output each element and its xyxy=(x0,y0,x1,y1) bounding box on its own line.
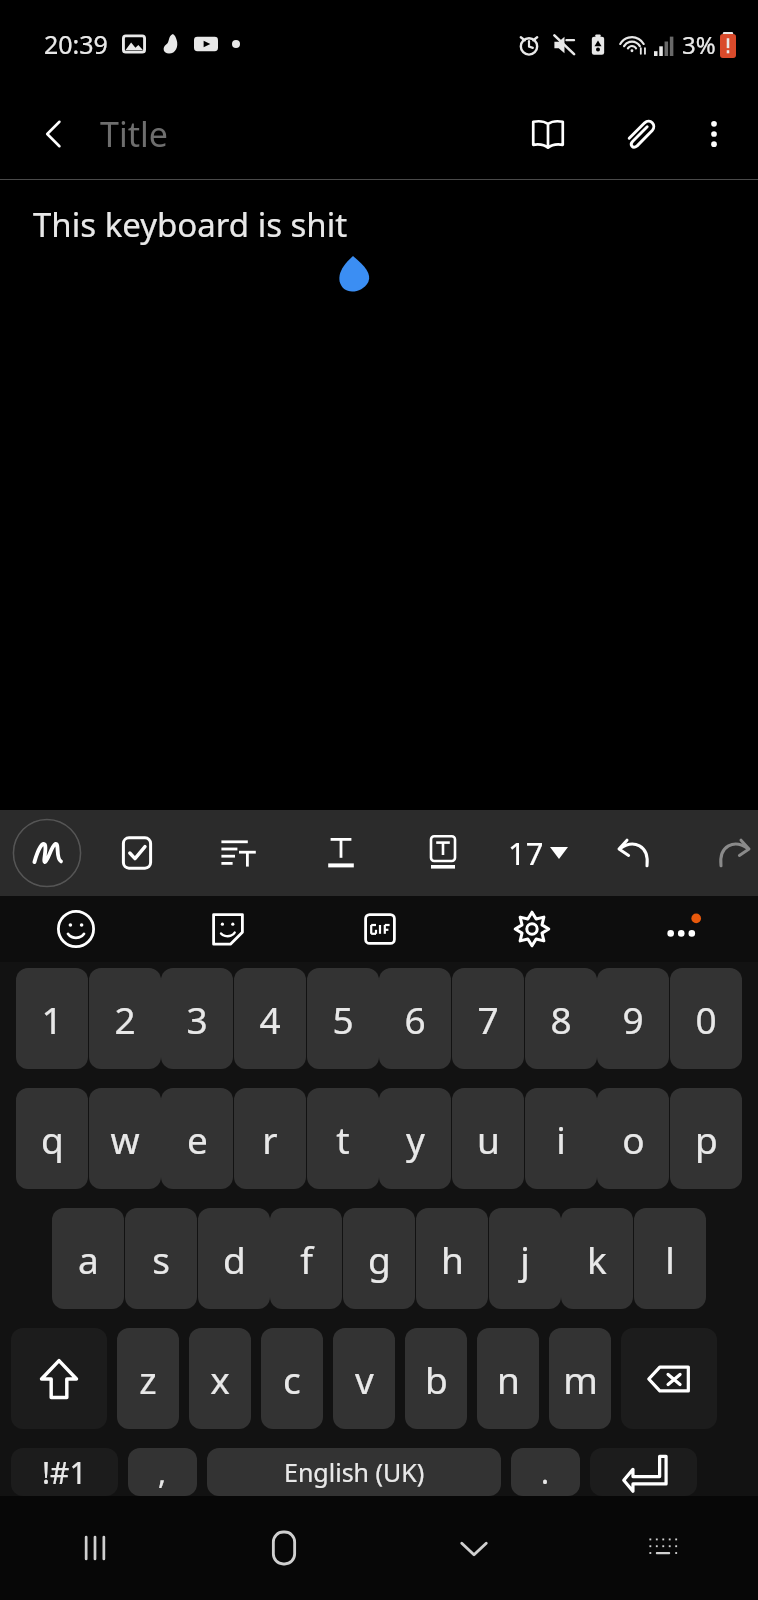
staticText: g xyxy=(368,1234,391,1284)
staticText: z xyxy=(139,1354,157,1404)
button[interactable]: Paragraph xyxy=(210,824,268,882)
staticText: k xyxy=(587,1234,607,1284)
staticText: v xyxy=(355,1354,374,1404)
button[interactable]: 4 xyxy=(234,968,306,1069)
button[interactable]: 6 xyxy=(379,968,451,1069)
button[interactable]: o xyxy=(597,1088,669,1189)
button[interactable]: Handwriting xyxy=(12,818,82,888)
staticText: 7 xyxy=(477,994,499,1044)
button[interactable]: m xyxy=(549,1328,611,1429)
staticText: w xyxy=(110,1114,140,1164)
button[interactable]: b xyxy=(405,1328,467,1429)
button[interactable]: Text style xyxy=(312,824,370,882)
button[interactable]: p xyxy=(670,1088,742,1189)
button[interactable]: Hide keyboard xyxy=(438,1512,510,1584)
staticText: This keyboard is shit xyxy=(33,202,348,247)
button[interactable]: r xyxy=(234,1088,306,1189)
button[interactable]: Recents xyxy=(59,1512,131,1584)
button[interactable]: More options xyxy=(686,106,742,162)
button[interactable]: Attach xyxy=(608,102,672,166)
button[interactable]: 2 xyxy=(89,968,161,1069)
button[interactable]: 17 xyxy=(504,832,572,874)
staticText: u xyxy=(477,1114,500,1164)
button[interactable]: Enter xyxy=(590,1448,697,1496)
staticText: l xyxy=(665,1234,675,1284)
button[interactable]: 7 xyxy=(452,968,524,1069)
staticText: c xyxy=(283,1354,301,1404)
button[interactable]: Shift xyxy=(11,1328,107,1429)
button[interactable]: Text box xyxy=(414,824,472,882)
button[interactable]: x xyxy=(189,1328,251,1429)
button[interactable]: 9 xyxy=(597,968,669,1069)
button[interactable]: 5 xyxy=(307,968,379,1069)
button[interactable]: l xyxy=(634,1208,706,1309)
button[interactable]: u xyxy=(452,1088,524,1189)
button[interactable]: . xyxy=(511,1448,580,1496)
staticText: 20:39 xyxy=(44,27,108,61)
staticText: b xyxy=(425,1354,448,1404)
staticText: Title xyxy=(100,111,168,157)
button[interactable]: Home xyxy=(248,1512,320,1584)
button[interactable]: More xyxy=(655,901,711,957)
button[interactable]: t xyxy=(307,1088,379,1189)
button[interactable]: GIF xyxy=(351,900,409,958)
staticText: . xyxy=(541,1452,550,1493)
staticText: m xyxy=(563,1354,598,1404)
button[interactable]: 3 xyxy=(161,968,233,1069)
button[interactable]: , xyxy=(128,1448,197,1496)
button[interactable]: n xyxy=(477,1328,539,1429)
button[interactable]: h xyxy=(416,1208,488,1309)
button[interactable]: !#1 xyxy=(11,1448,118,1496)
staticText: p xyxy=(695,1114,718,1164)
staticText: x xyxy=(210,1354,230,1404)
button[interactable]: Reading mode xyxy=(516,102,580,166)
staticText: 0 xyxy=(695,994,717,1044)
button[interactable]: Stickers xyxy=(199,900,257,958)
button[interactable]: k xyxy=(561,1208,633,1309)
button[interactable]: s xyxy=(125,1208,197,1309)
button[interactable]: f xyxy=(270,1208,342,1309)
staticText: 8 xyxy=(550,994,572,1044)
staticText: 5 xyxy=(332,994,354,1044)
button[interactable]: Undo xyxy=(606,824,664,882)
staticText: f xyxy=(300,1234,313,1284)
button[interactable]: Emoji xyxy=(47,900,105,958)
button[interactable]: Redo xyxy=(708,824,758,882)
button[interactable]: 1 xyxy=(16,968,88,1069)
staticText: d xyxy=(223,1234,246,1284)
button[interactable]: q xyxy=(16,1088,88,1189)
staticText: English (UK) xyxy=(284,1455,425,1489)
button[interactable]: Checklist xyxy=(108,824,166,882)
button[interactable]: v xyxy=(333,1328,395,1429)
button[interactable]: j xyxy=(489,1208,561,1309)
button[interactable]: i xyxy=(525,1088,597,1189)
staticText: 17 xyxy=(508,832,544,874)
staticText: t xyxy=(336,1114,350,1164)
button[interactable]: Change keyboard xyxy=(627,1512,699,1584)
staticText: !#1 xyxy=(42,1452,87,1493)
staticText: 4 xyxy=(259,994,281,1044)
button[interactable]: d xyxy=(198,1208,270,1309)
button[interactable]: English (UK) xyxy=(207,1448,501,1496)
staticText: q xyxy=(41,1114,64,1164)
button[interactable]: g xyxy=(343,1208,415,1309)
staticText: 2 xyxy=(114,994,136,1044)
button[interactable]: Keyboard settings xyxy=(503,900,561,958)
staticText: r xyxy=(262,1114,278,1164)
button[interactable]: 0 xyxy=(670,968,742,1069)
button[interactable]: y xyxy=(379,1088,451,1189)
button[interactable]: Back xyxy=(18,98,90,170)
button[interactable]: w xyxy=(89,1088,161,1189)
staticText: h xyxy=(441,1234,464,1284)
button[interactable]: z xyxy=(117,1328,179,1429)
button[interactable]: e xyxy=(161,1088,233,1189)
staticText: j xyxy=(520,1234,530,1284)
button[interactable]: 8 xyxy=(525,968,597,1069)
button[interactable]: a xyxy=(52,1208,124,1309)
staticText: e xyxy=(187,1114,208,1164)
button[interactable]: c xyxy=(261,1328,323,1429)
staticText: 6 xyxy=(404,994,426,1044)
button[interactable]: Backspace xyxy=(621,1328,717,1429)
staticText: n xyxy=(497,1354,520,1404)
staticText: o xyxy=(622,1114,645,1164)
